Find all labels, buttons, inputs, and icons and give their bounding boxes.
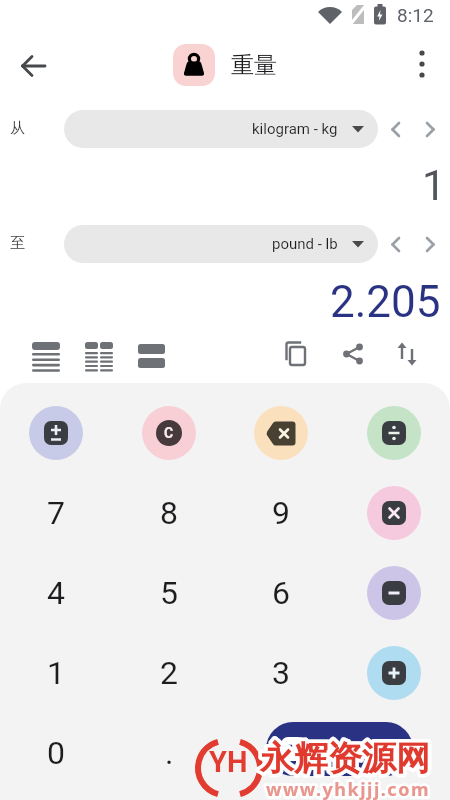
button[interactable]: 2 [129,637,209,709]
button[interactable]: 4 [16,557,96,629]
staticText: 至 [10,234,25,253]
button[interactable] [390,237,402,252]
staticText: 0 [47,734,65,772]
staticText: 8:12 [397,4,434,26]
staticText: 5 [160,574,178,612]
button[interactable]: C [142,406,196,460]
button[interactable] [393,339,421,369]
button[interactable] [14,46,54,86]
staticText: 4 [47,574,65,612]
button[interactable]: kilogram - kg [64,110,378,148]
staticText: 9 [272,494,290,532]
staticText: 永辉资源网 [260,737,430,780]
button[interactable] [254,406,308,460]
staticText: 从 [10,119,25,138]
button[interactable]: 9 [241,477,321,549]
button[interactable] [31,336,61,372]
button[interactable] [266,722,413,776]
button[interactable] [282,339,312,369]
button[interactable]: 1 [16,637,96,709]
staticText: 永辉资源网 [260,737,430,780]
staticText: pound - lb [272,235,338,253]
button[interactable] [29,406,83,460]
staticText: C [164,425,174,441]
button[interactable]: pound - lb [64,225,378,263]
button[interactable] [402,44,442,84]
button[interactable] [367,486,421,540]
button[interactable] [424,122,436,137]
staticText: www.yhkjjj.com [266,777,430,800]
button[interactable]: 3 [241,637,321,709]
staticText: YH [209,745,248,779]
staticText: www.yhkjjj.com [266,777,430,800]
button[interactable]: . [129,717,209,789]
button[interactable] [338,339,368,369]
staticText: 2 [160,654,178,692]
staticText: 2.205 [330,276,441,328]
button[interactable] [367,406,421,460]
button[interactable]: 7 [16,477,96,549]
staticText: 6 [272,574,290,612]
staticText: kilogram - kg [252,120,338,138]
button[interactable] [137,336,167,372]
staticText: 1 [47,654,65,692]
button[interactable]: 8 [129,477,209,549]
button[interactable]: 5 [129,557,209,629]
staticText: 7 [47,494,65,532]
staticText: . [165,734,174,772]
staticText: 1 [422,161,446,210]
button[interactable] [84,336,114,372]
button[interactable] [367,646,421,700]
button[interactable] [424,237,436,252]
staticText: 3 [272,654,290,692]
button[interactable]: 6 [241,557,321,629]
staticText: 8 [160,494,178,532]
button[interactable] [390,122,402,137]
button[interactable]: 0 [16,717,96,789]
staticText: 重量 [231,51,277,80]
button[interactable] [367,566,421,620]
